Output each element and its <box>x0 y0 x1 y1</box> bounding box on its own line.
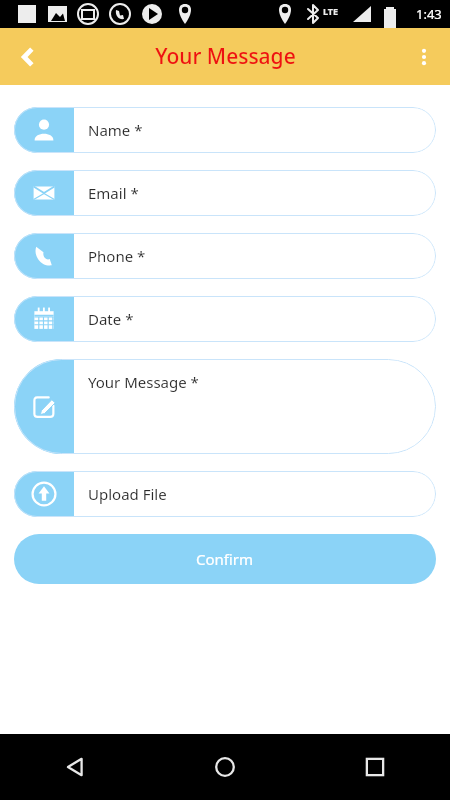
staticText: Upload File <box>88 484 167 504</box>
button[interactable]: Recent apps <box>300 734 450 800</box>
staticText: Confirm <box>196 549 254 569</box>
staticText: LTE <box>323 5 339 17</box>
staticText: Date * <box>88 309 134 329</box>
staticText: Phone * <box>88 246 146 266</box>
button[interactable]: Confirm <box>14 534 436 584</box>
staticText: 1:43 <box>416 5 442 23</box>
button[interactable]: Home <box>150 734 300 800</box>
staticText: Email * <box>88 183 139 203</box>
button[interactable]: Email * <box>14 170 436 216</box>
staticText: Name * <box>88 120 143 140</box>
button[interactable]: Back <box>6 35 50 79</box>
button[interactable]: Phone * <box>14 233 436 279</box>
button[interactable]: Back <box>0 734 150 800</box>
button[interactable]: Your Message * <box>14 359 436 454</box>
staticText: Your Message * <box>88 372 199 392</box>
button[interactable]: Name * <box>14 107 436 153</box>
button[interactable]: Date * <box>14 296 436 342</box>
button[interactable]: More options <box>402 35 446 79</box>
staticText: Your Message <box>155 42 296 71</box>
button[interactable]: Upload File <box>14 471 436 517</box>
